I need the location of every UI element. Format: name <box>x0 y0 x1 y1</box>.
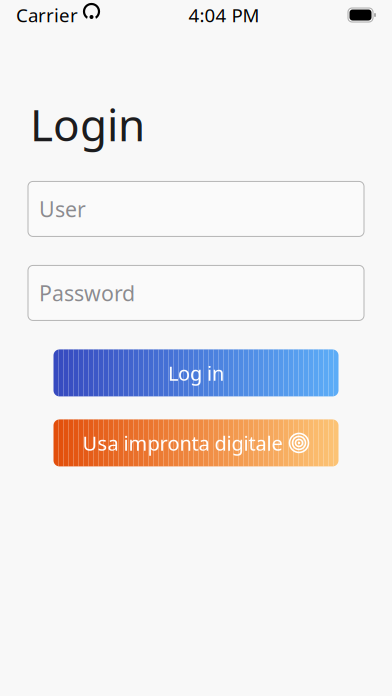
button[interactable]: User <box>28 181 364 236</box>
button[interactable]: Log in <box>53 349 338 396</box>
staticText: Log in <box>168 360 224 386</box>
staticText: Login <box>30 95 145 153</box>
button[interactable]: Password <box>28 265 364 320</box>
staticText: Password <box>39 279 135 307</box>
staticText: Carrier <box>16 3 78 27</box>
staticText: Usa impronta digitale <box>82 430 282 456</box>
staticText: User <box>39 195 86 223</box>
button[interactable]: Usa impronta digitale <box>53 419 338 466</box>
staticText: 4:04 PM <box>188 3 259 27</box>
